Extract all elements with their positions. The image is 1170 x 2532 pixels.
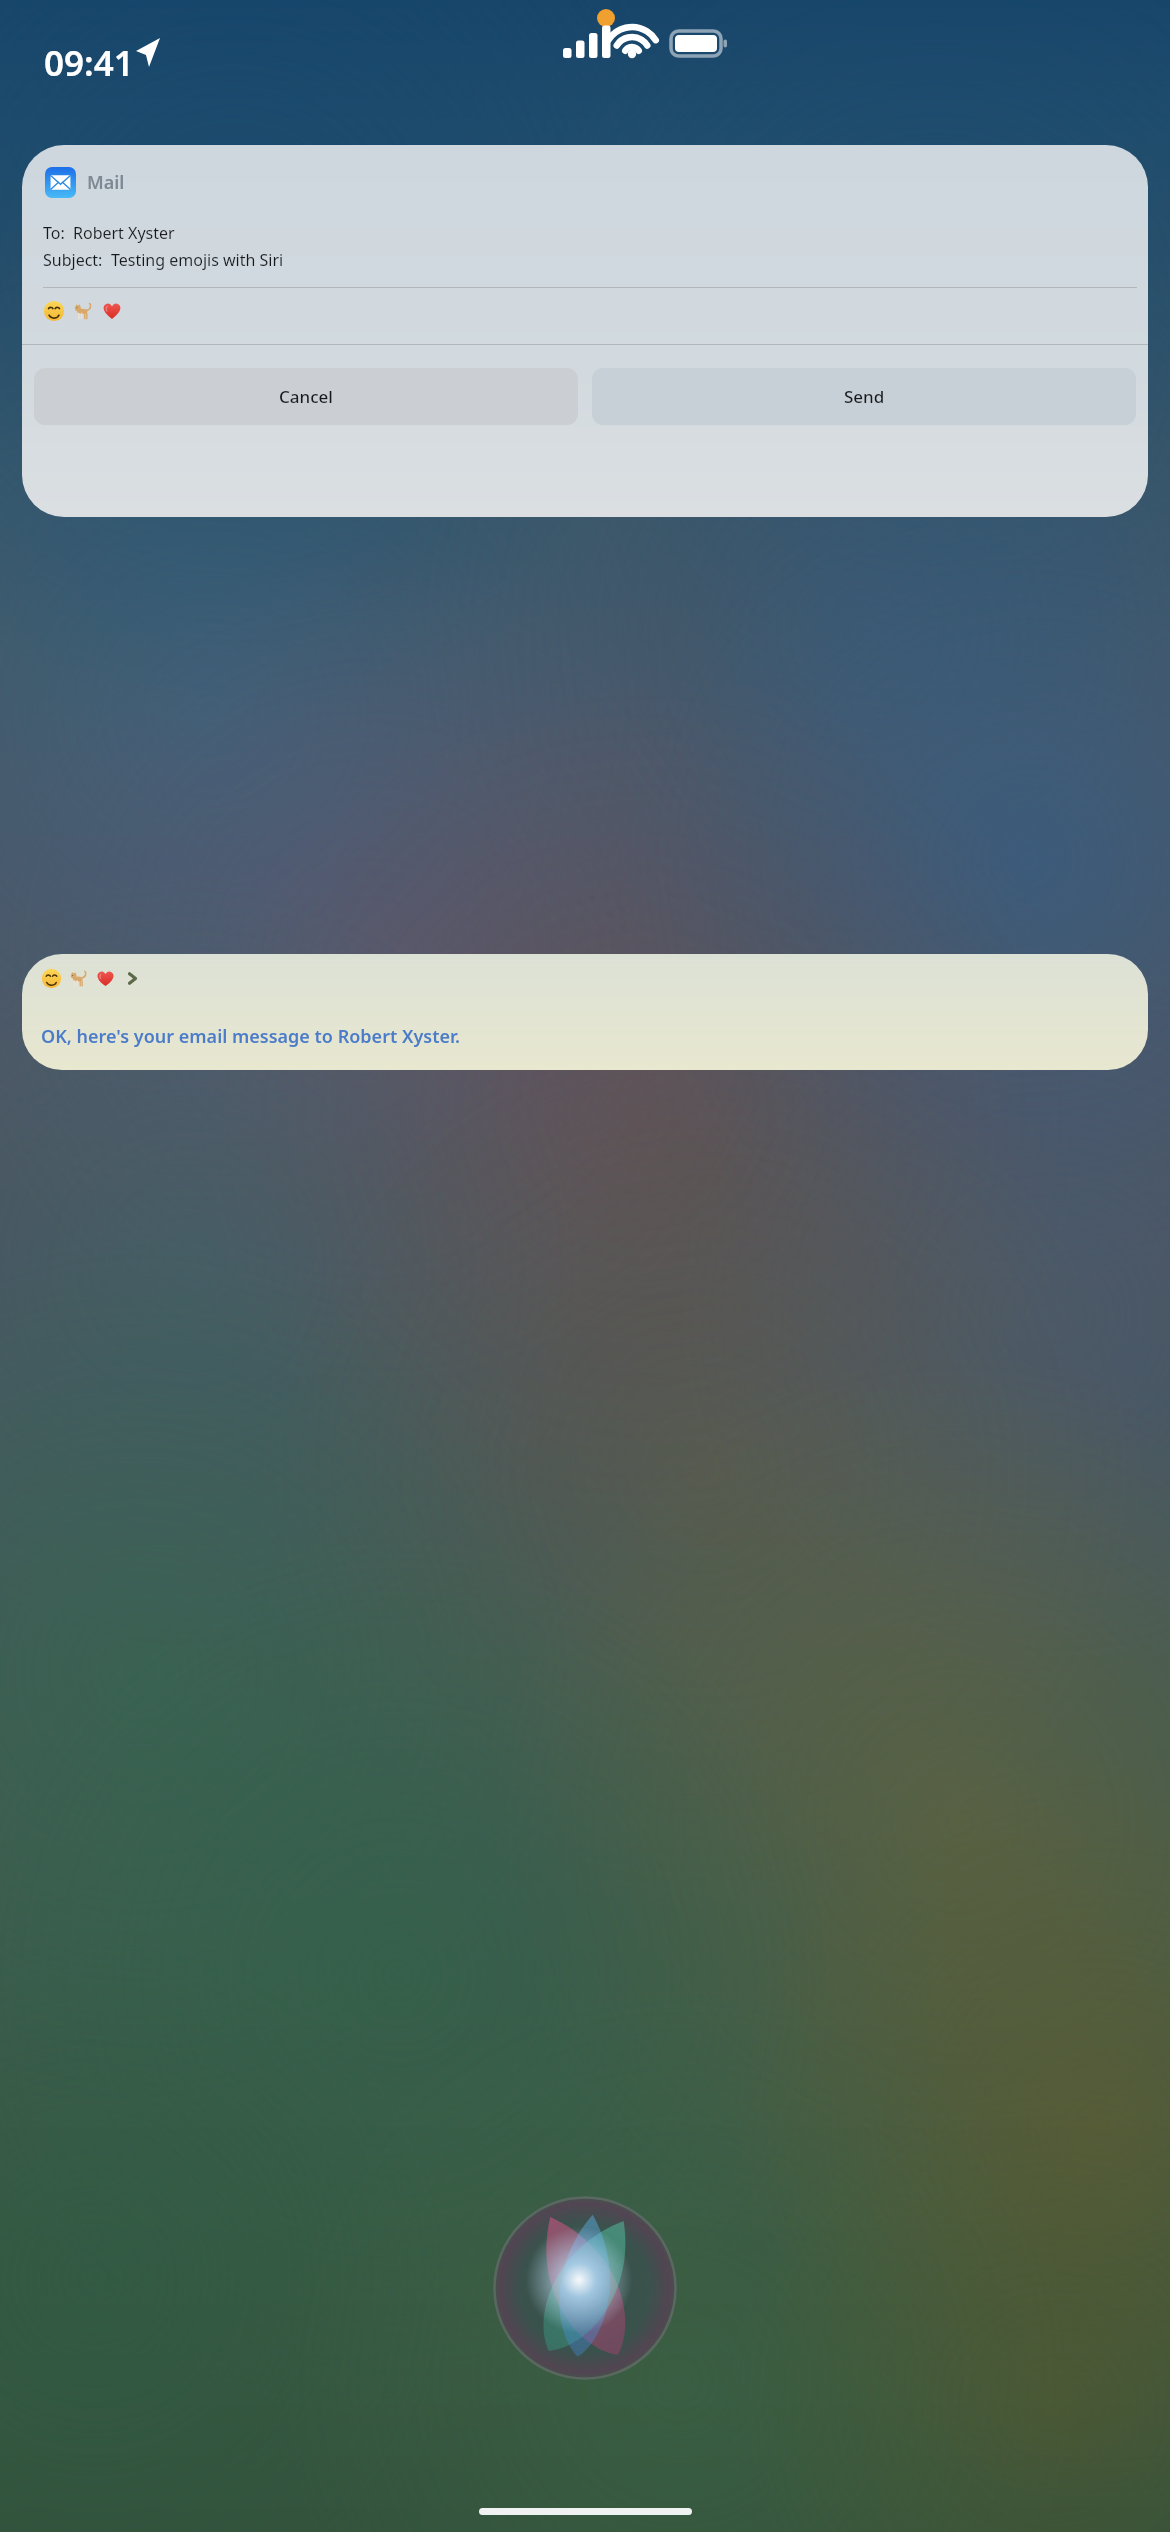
staticText: Subject: [43, 249, 103, 271]
staticText: 09:41 [44, 39, 134, 87]
staticText: Mail [87, 170, 125, 195]
staticText: OK, here's your email message to Robert … [41, 1024, 460, 1049]
staticText: Testing emojis with Siri [111, 249, 284, 271]
button[interactable]: Send [592, 368, 1136, 425]
other: Show message details [125, 971, 140, 986]
staticText: To: [43, 222, 65, 244]
staticText: Send [844, 385, 885, 408]
button[interactable]: Cancel [34, 368, 578, 425]
staticText: Robert Xyster [73, 222, 175, 244]
button[interactable]: Show message details [22, 954, 1148, 1070]
staticText: Cancel [279, 385, 333, 408]
other: Siri [0, 0, 1170, 2532]
